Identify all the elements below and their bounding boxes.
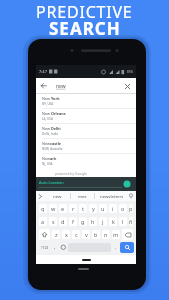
staticText: NJ, USA bbox=[42, 162, 53, 166]
staticText: s bbox=[52, 218, 55, 225]
button[interactable]: New York bbox=[36, 94, 136, 109]
staticText: g bbox=[81, 218, 85, 225]
button[interactable]: b bbox=[92, 230, 100, 239]
staticText: m bbox=[113, 231, 119, 238]
button[interactable]: y bbox=[89, 204, 97, 213]
staticText: o bbox=[121, 205, 125, 212]
button[interactable] bbox=[36, 78, 52, 94]
button[interactable]: k bbox=[109, 217, 117, 226]
button[interactable]: h bbox=[89, 217, 97, 226]
button[interactable]: , bbox=[51, 242, 59, 253]
button[interactable]: l bbox=[119, 217, 127, 226]
button[interactable]: Newcastle bbox=[36, 139, 136, 154]
button[interactable]: new bbox=[44, 191, 70, 201]
staticText: ñ bbox=[129, 218, 133, 225]
button[interactable]: mex bbox=[71, 191, 94, 201]
staticText: ?123 bbox=[41, 245, 49, 250]
button[interactable]: j bbox=[99, 217, 107, 226]
button[interactable]: f bbox=[69, 217, 77, 226]
staticText: newsletters bbox=[100, 193, 124, 199]
staticText: r bbox=[72, 205, 75, 212]
button[interactable]: ?123 bbox=[38, 242, 51, 253]
staticText: Auto Location bbox=[39, 180, 64, 185]
staticText: w bbox=[51, 205, 56, 212]
button[interactable] bbox=[120, 79, 134, 93]
button[interactable]: o bbox=[119, 204, 127, 213]
button[interactable]: w bbox=[49, 204, 57, 213]
staticText: New Orleans bbox=[42, 111, 66, 116]
staticText: Newark bbox=[42, 156, 57, 161]
staticText: i bbox=[112, 205, 114, 212]
button[interactable]: d bbox=[59, 217, 67, 226]
staticText: New Delhi bbox=[42, 126, 61, 131]
staticText: c bbox=[75, 231, 78, 238]
button[interactable]: z bbox=[52, 230, 60, 239]
staticText: l bbox=[122, 218, 124, 225]
staticText: NSW, Australia bbox=[42, 147, 63, 151]
button[interactable]: a bbox=[39, 217, 47, 226]
staticText: , bbox=[54, 244, 56, 251]
button[interactable]: . bbox=[111, 242, 120, 253]
button[interactable] bbox=[39, 229, 50, 240]
button[interactable]: c bbox=[72, 230, 80, 239]
staticText: b bbox=[94, 231, 98, 238]
staticText: x bbox=[65, 231, 68, 238]
staticText: LA, USA bbox=[42, 117, 53, 121]
staticText: h bbox=[91, 218, 95, 225]
button[interactable]: q bbox=[39, 204, 47, 213]
button[interactable] bbox=[122, 229, 133, 240]
staticText: Delhi, India bbox=[42, 132, 59, 136]
button[interactable]: ñ bbox=[129, 217, 133, 226]
staticText: e bbox=[61, 205, 65, 212]
staticText: mex bbox=[78, 193, 87, 199]
button[interactable]: n bbox=[102, 230, 110, 239]
button[interactable]: p bbox=[129, 204, 133, 213]
staticText: v bbox=[85, 231, 88, 238]
button[interactable]: Auto Location bbox=[36, 177, 136, 191]
staticText: f bbox=[72, 218, 74, 225]
button[interactable] bbox=[120, 242, 134, 253]
button[interactable]: u bbox=[99, 204, 107, 213]
staticText: y bbox=[92, 205, 95, 212]
staticText: . bbox=[115, 244, 117, 251]
staticText: z bbox=[55, 231, 58, 238]
button[interactable]: r bbox=[69, 204, 77, 213]
button[interactable]: e bbox=[59, 204, 67, 213]
staticText: 7:47 bbox=[39, 69, 47, 74]
button[interactable]: New Orleans bbox=[36, 109, 136, 124]
button[interactable]: i bbox=[109, 204, 117, 213]
staticText: SEARCH bbox=[49, 17, 121, 40]
staticText: t bbox=[82, 205, 84, 212]
staticText: p bbox=[129, 205, 133, 212]
staticText: k bbox=[112, 218, 115, 225]
button[interactable]: m bbox=[112, 230, 120, 239]
staticText: d bbox=[61, 218, 65, 225]
staticText: Newcastle bbox=[42, 141, 62, 146]
staticText: q bbox=[41, 205, 45, 212]
staticText: n bbox=[104, 231, 108, 238]
staticText: new bbox=[53, 193, 62, 199]
staticText: j bbox=[102, 218, 104, 225]
button[interactable]: g bbox=[79, 217, 87, 226]
staticText: New York bbox=[42, 96, 60, 101]
staticText: u bbox=[101, 205, 105, 212]
staticText: powered by Google bbox=[55, 171, 87, 176]
staticText: new bbox=[56, 83, 66, 90]
button[interactable] bbox=[59, 242, 68, 253]
staticText: 85% bbox=[127, 70, 133, 74]
button[interactable]: newsletters bbox=[95, 191, 128, 201]
staticText: a bbox=[41, 218, 45, 225]
staticText: PREDICTIVE bbox=[36, 1, 133, 23]
staticText: NY, USA bbox=[42, 102, 54, 106]
button[interactable]: t bbox=[79, 204, 87, 213]
button[interactable]: s bbox=[49, 217, 57, 226]
button[interactable]: New Delhi bbox=[36, 124, 136, 139]
button[interactable]: x bbox=[62, 230, 70, 239]
button[interactable]: v bbox=[82, 230, 90, 239]
button[interactable]: Newark bbox=[36, 154, 136, 169]
